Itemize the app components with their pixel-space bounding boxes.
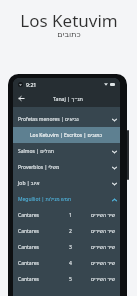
button[interactable]: Proverbios | משלי: [13, 159, 120, 175]
button[interactable]: Back: [13, 90, 29, 107]
staticText: Profetas menores | נביאים: [18, 116, 79, 123]
staticText: 5: [69, 276, 72, 283]
staticText: Cantares: [18, 212, 39, 219]
staticText: שיר השירים: [91, 276, 115, 283]
staticText: 4: [69, 260, 72, 267]
button[interactable]: Cantares: [13, 271, 120, 287]
staticText: Proverbios | משלי: [18, 164, 60, 171]
staticText: Cantares: [18, 228, 39, 235]
button[interactable]: Cantares: [13, 239, 120, 255]
staticText: כתובים: [57, 30, 81, 39]
staticText: Cantares: [18, 244, 39, 251]
staticText: Cantares: [18, 260, 39, 267]
button[interactable]: Cantares: [13, 207, 120, 223]
staticText: 9:21: [26, 81, 37, 88]
button[interactable]: Profetas menores | נביאים: [13, 111, 120, 127]
staticText: Los Ketuvim | Escritos | כתובים: [30, 132, 103, 139]
staticText: שיר השירים: [91, 260, 115, 267]
staticText: Salmos | תהלים: [18, 148, 55, 155]
button[interactable]: Salmos | תהלים: [13, 143, 120, 159]
staticText: 1: [69, 212, 72, 219]
staticText: 2: [69, 228, 72, 235]
staticText: 3: [69, 244, 72, 251]
staticText: Job | איוב: [18, 180, 40, 187]
staticText: Tanaj | תנ״ך: [53, 95, 84, 102]
staticText: שיר השירים: [91, 212, 115, 219]
button[interactable]: Los Ketuvim | Escritos | כתובים: [13, 127, 120, 143]
staticText: שיר השירים: [91, 244, 115, 251]
staticText: Megulliot | חמש מגילות: [18, 196, 72, 203]
staticText: Los Ketuvim: [20, 9, 118, 32]
button[interactable]: Megulliot | חמש מגילות: [13, 191, 120, 207]
button[interactable]: Job | איוב: [13, 175, 120, 191]
button[interactable]: Cantares: [13, 223, 120, 239]
staticText: שיר השירים: [91, 228, 115, 235]
button[interactable]: Cantares: [13, 255, 120, 271]
staticText: Cantares: [18, 276, 39, 283]
